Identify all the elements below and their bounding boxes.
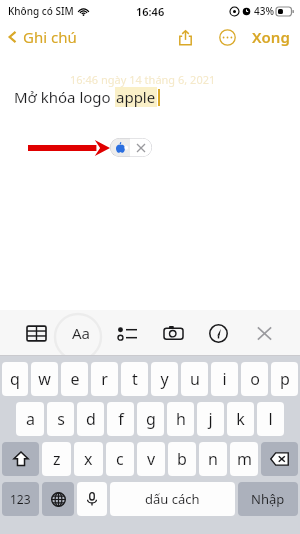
button[interactable]: z bbox=[42, 442, 71, 476]
staticText: Không có SIM bbox=[8, 4, 74, 18]
staticText: s bbox=[57, 408, 65, 430]
button[interactable]: g bbox=[137, 402, 164, 436]
staticText: k bbox=[236, 408, 245, 430]
button[interactable]: k bbox=[227, 402, 254, 436]
staticText: dấu cách bbox=[145, 490, 200, 508]
staticText: c bbox=[116, 448, 124, 470]
staticText: t bbox=[132, 368, 138, 390]
button[interactable]: c bbox=[106, 442, 134, 476]
staticText: f bbox=[118, 408, 124, 430]
button[interactable]: y bbox=[151, 362, 178, 396]
button[interactable]: t bbox=[121, 362, 148, 396]
button[interactable]: Change keyboard bbox=[42, 482, 74, 516]
button[interactable]: b bbox=[168, 442, 196, 476]
staticText: Aa bbox=[72, 323, 91, 343]
staticText: 43% bbox=[254, 4, 274, 18]
button[interactable]: Camera bbox=[159, 319, 187, 347]
button[interactable]: Nhập bbox=[238, 482, 298, 516]
button[interactable]: Close keyboard bbox=[250, 319, 278, 347]
button[interactable]: Ghi chú bbox=[6, 27, 77, 47]
staticText: h bbox=[176, 408, 186, 430]
button[interactable]: x bbox=[74, 442, 103, 476]
button[interactable]: Backspace bbox=[261, 442, 298, 476]
button[interactable]: f bbox=[107, 402, 134, 436]
staticText: y bbox=[160, 368, 169, 390]
button[interactable]: p bbox=[271, 362, 298, 396]
button[interactable]: o bbox=[241, 362, 268, 396]
button[interactable]: More options bbox=[214, 24, 240, 50]
button[interactable]: 123 bbox=[2, 482, 39, 516]
button[interactable]: u bbox=[181, 362, 208, 396]
button[interactable]: dấu cách bbox=[110, 482, 235, 516]
staticText: 16:46 bbox=[136, 4, 165, 19]
button[interactable]: Table bbox=[22, 319, 50, 347]
staticText: m bbox=[237, 448, 252, 470]
button[interactable]: r bbox=[91, 362, 118, 396]
staticText: j bbox=[208, 408, 213, 430]
button[interactable]: Text format bbox=[68, 319, 96, 347]
button[interactable]: l bbox=[257, 402, 284, 436]
button[interactable]: Xong bbox=[250, 23, 292, 51]
staticText: x bbox=[84, 448, 93, 470]
staticText: b bbox=[177, 448, 187, 470]
staticText: e bbox=[70, 368, 80, 390]
button[interactable]: w bbox=[31, 362, 58, 396]
button[interactable]: h bbox=[167, 402, 194, 436]
staticText: i bbox=[222, 368, 227, 390]
staticText: Mở khóa logo bbox=[14, 87, 115, 107]
button[interactable]: i bbox=[211, 362, 238, 396]
button[interactable]: a bbox=[16, 402, 44, 436]
button[interactable]: q bbox=[2, 362, 28, 396]
staticText: d bbox=[86, 408, 96, 430]
staticText: w bbox=[38, 368, 51, 390]
staticText: g bbox=[146, 408, 156, 430]
staticText: 123 bbox=[10, 491, 31, 507]
button[interactable]: Dictation bbox=[77, 482, 107, 516]
staticText: p bbox=[280, 368, 290, 390]
button[interactable]: Apple logo suggestion bbox=[110, 138, 152, 157]
staticText: Nhập bbox=[251, 490, 285, 508]
button[interactable]: Share bbox=[172, 24, 198, 50]
button[interactable]: Markup bbox=[204, 319, 232, 347]
button[interactable]: Checklist bbox=[113, 319, 141, 347]
staticText: Xong bbox=[252, 27, 290, 47]
button[interactable]: j bbox=[197, 402, 224, 436]
staticText: q bbox=[10, 368, 20, 390]
staticText: a bbox=[26, 408, 35, 430]
staticText: n bbox=[208, 448, 218, 470]
staticText: l bbox=[268, 408, 273, 430]
staticText: apple bbox=[116, 87, 156, 107]
staticText: Ghi chú bbox=[23, 27, 77, 47]
button[interactable]: v bbox=[137, 442, 165, 476]
button[interactable]: Shift bbox=[2, 442, 39, 476]
button[interactable]: n bbox=[199, 442, 227, 476]
staticText: o bbox=[250, 368, 260, 390]
button[interactable]: m bbox=[230, 442, 258, 476]
staticText: v bbox=[147, 448, 156, 470]
button[interactable]: e bbox=[61, 362, 88, 396]
staticText: r bbox=[101, 368, 108, 390]
staticText: z bbox=[53, 448, 61, 470]
button[interactable]: d bbox=[77, 402, 104, 436]
staticText: 16:46 ngày 14 tháng 6, 2021 bbox=[70, 72, 216, 87]
button[interactable]: s bbox=[47, 402, 74, 436]
staticText: u bbox=[190, 368, 200, 390]
